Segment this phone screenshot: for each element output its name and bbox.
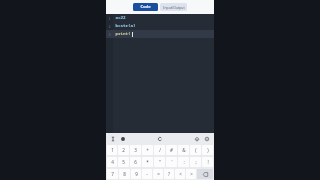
button[interactable]: <	[175, 169, 185, 179]
button[interactable]: (	[190, 145, 201, 155]
button[interactable]: 8	[119, 169, 130, 179]
staticText: -	[146, 171, 148, 177]
staticText: 6	[134, 159, 137, 165]
button[interactable]: 9	[131, 169, 141, 179]
button[interactable]: Code	[133, 3, 158, 11]
button[interactable]: :	[178, 157, 189, 167]
staticText: ;	[195, 159, 197, 165]
staticText: Code	[140, 4, 151, 10]
staticText: 5	[122, 159, 125, 165]
button[interactable]: Settings	[203, 135, 211, 143]
button[interactable]: &	[178, 145, 189, 155]
button[interactable]: Sticker	[119, 135, 127, 143]
button[interactable]: 4	[107, 157, 117, 167]
staticText: /	[159, 147, 161, 153]
staticText: :	[183, 159, 185, 165]
staticText: >	[190, 171, 193, 177]
button[interactable]: )	[202, 145, 213, 155]
button[interactable]: /	[154, 145, 165, 155]
staticText: "	[159, 159, 161, 165]
staticText: 3	[134, 147, 137, 153]
button[interactable]: #	[166, 145, 177, 155]
staticText: &	[182, 147, 186, 153]
button[interactable]: Text format	[109, 135, 117, 143]
staticText: Input/Output	[163, 5, 185, 10]
staticText: 8	[123, 171, 126, 177]
staticText: #	[170, 147, 173, 153]
button[interactable]: -	[142, 169, 152, 179]
staticText: 1	[108, 16, 111, 21]
button[interactable]: 5	[118, 157, 129, 167]
button[interactable]: 1	[106, 14, 214, 22]
button[interactable]: ?	[164, 169, 174, 179]
staticText: +	[146, 147, 149, 153]
button[interactable]: 7	[107, 169, 118, 179]
staticText: !	[207, 159, 209, 165]
button[interactable]: 2	[118, 145, 129, 155]
button[interactable]: "	[154, 157, 165, 167]
button[interactable]: Input/Output	[160, 3, 187, 11]
button[interactable]: 3	[130, 145, 141, 155]
button[interactable]: =	[153, 169, 163, 179]
staticText: 4	[111, 159, 114, 165]
button[interactable]: 6	[130, 157, 141, 167]
button[interactable]: *	[142, 157, 153, 167]
button[interactable]: Shift	[193, 135, 201, 143]
staticText: ?	[168, 171, 170, 177]
staticText: 1	[111, 147, 114, 153]
staticText: '	[171, 159, 173, 165]
staticText: 3	[108, 32, 111, 37]
button[interactable]: Undo	[156, 135, 164, 143]
button[interactable]: 1	[107, 145, 117, 155]
button[interactable]: ;	[190, 157, 201, 167]
button[interactable]: '	[166, 157, 177, 167]
button[interactable]: Backspace	[197, 169, 213, 179]
staticText: (	[195, 147, 197, 153]
staticText: )	[207, 147, 209, 153]
staticText: print(	[115, 31, 131, 37]
button[interactable]: >	[186, 169, 196, 179]
staticText: <	[179, 171, 182, 177]
staticText: 9	[135, 171, 138, 177]
staticText: =	[157, 171, 160, 177]
button[interactable]: +	[142, 145, 153, 155]
button[interactable]: 3	[106, 30, 214, 38]
staticText: *	[146, 159, 149, 165]
staticText: 7	[111, 171, 114, 177]
button[interactable]: 2	[106, 22, 214, 30]
staticText: a=22	[115, 15, 126, 21]
staticText: 2	[108, 24, 111, 29]
staticText: b=str(a)	[115, 23, 136, 29]
staticText: 2	[122, 147, 125, 153]
button[interactable]: !	[202, 157, 213, 167]
